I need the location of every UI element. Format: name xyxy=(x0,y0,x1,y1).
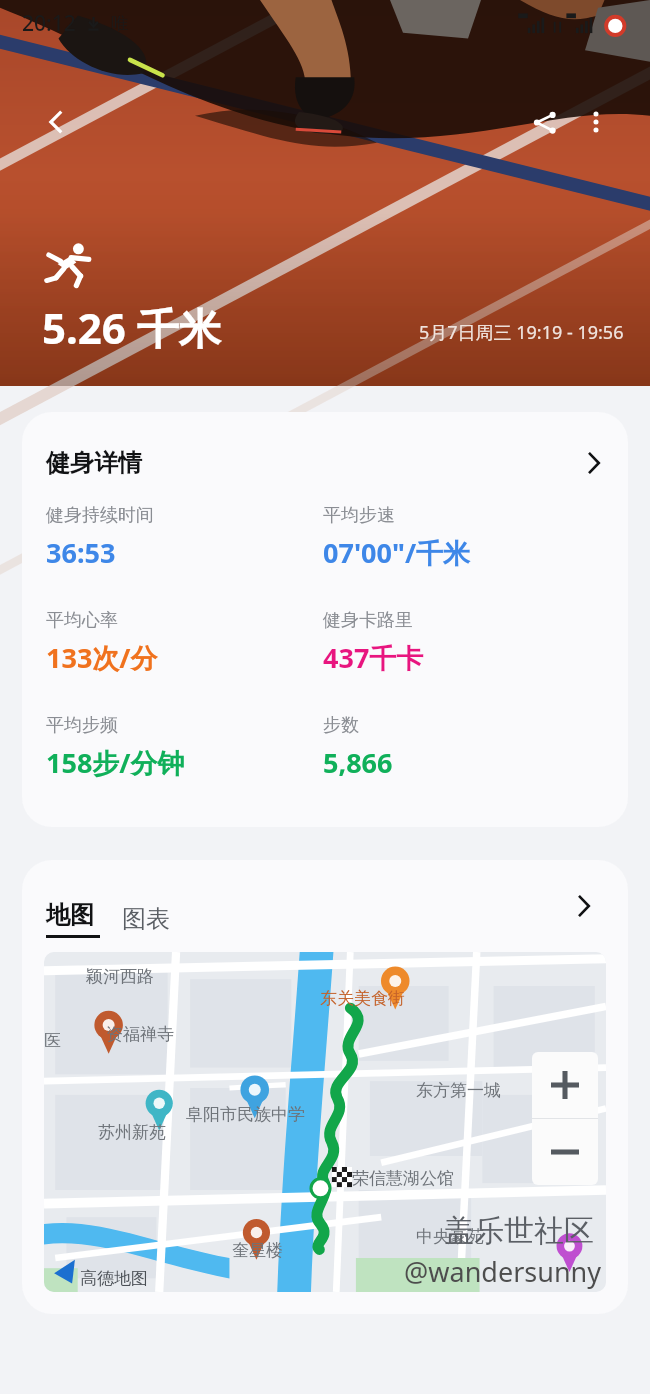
staticText: 苏州新苑 xyxy=(98,1122,166,1143)
staticText: 步数 xyxy=(323,714,359,737)
staticText: 437千卡 xyxy=(323,639,424,676)
staticText: 5,866 xyxy=(323,744,393,781)
button[interactable]: More options xyxy=(570,96,622,148)
staticText: 荣信慧湖公馆 xyxy=(352,1168,454,1189)
button[interactable]: 地图 xyxy=(46,900,100,938)
button[interactable]: Open map xyxy=(562,884,606,928)
staticText: 高德地图 xyxy=(80,1268,148,1289)
staticText: 图表 xyxy=(122,904,170,934)
staticText: 健身卡路里 xyxy=(323,609,413,632)
staticText: 奎星楼 xyxy=(232,1240,283,1261)
staticText: 地图 xyxy=(46,900,94,930)
staticText: 东方第一城 xyxy=(416,1080,501,1101)
staticText: 阜阳市民族中学 xyxy=(186,1104,305,1125)
button[interactable]: 健身详情 xyxy=(22,412,628,504)
staticText: 中央豪苑 xyxy=(416,1226,484,1247)
staticText: 133次/分 xyxy=(46,639,158,676)
button[interactable]: Zoom in xyxy=(532,1052,598,1118)
staticText: 盖乐世社区 xyxy=(444,1212,594,1250)
staticText: 健身持续时间 xyxy=(46,504,154,527)
staticText: 健身详情 xyxy=(46,448,142,478)
button[interactable]: 图表 xyxy=(122,904,170,934)
staticText: 平均步速 xyxy=(323,504,395,527)
button[interactable]: Back xyxy=(30,96,82,148)
staticText: 5月7日周三 19:19 - 19:56 xyxy=(419,320,624,345)
staticText: @wandersunny xyxy=(404,1253,602,1290)
staticText: 20:12 xyxy=(22,9,76,38)
staticText: 东关美食街 xyxy=(320,988,405,1009)
staticText: 158步/分钟 xyxy=(46,744,185,781)
staticText: 07'00"/千米 xyxy=(323,534,471,571)
staticText: 平均心率 xyxy=(46,609,118,632)
staticText: 资福禅寺 xyxy=(106,1024,174,1045)
staticText: 颖河西路 xyxy=(86,966,154,987)
staticText: 36:53 xyxy=(46,534,116,571)
staticText: 唯 xyxy=(111,13,128,34)
staticText: 5.26 千米 xyxy=(42,299,221,356)
button[interactable]: Zoom out xyxy=(532,1119,598,1185)
staticText: 医 xyxy=(44,1030,61,1051)
button[interactable]: Route map xyxy=(44,952,606,1292)
button[interactable]: Share xyxy=(518,96,570,148)
staticText: 平均步频 xyxy=(46,714,118,737)
